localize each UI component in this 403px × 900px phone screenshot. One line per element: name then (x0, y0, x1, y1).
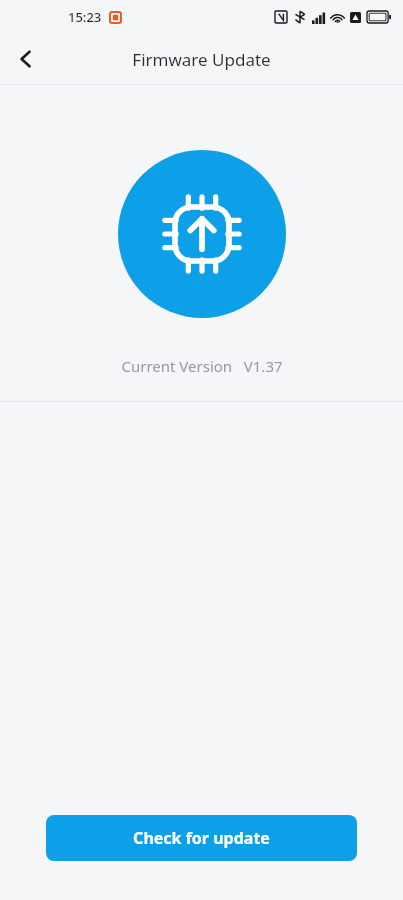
button[interactable]: Back (4, 37, 48, 81)
staticText: 15:23 (68, 8, 102, 26)
button[interactable]: Check for update (46, 815, 357, 861)
staticText: Check for update (133, 827, 270, 849)
staticText: Firmware Update (132, 48, 271, 71)
staticText: Current Version V1.37 (121, 356, 283, 376)
